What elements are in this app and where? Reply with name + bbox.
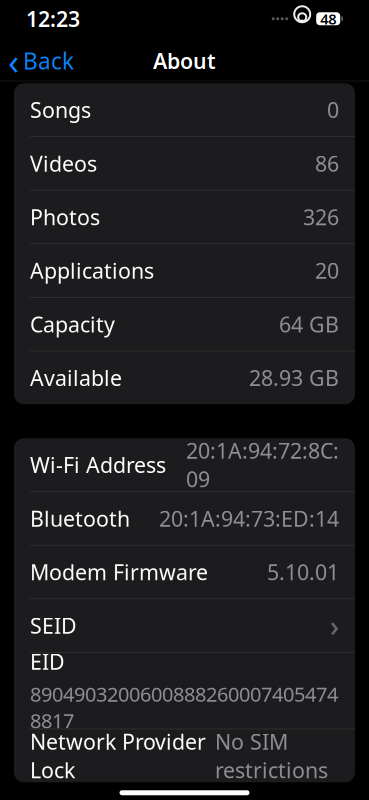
button[interactable]: Videos [14, 137, 355, 190]
staticText: 48 [320, 9, 336, 28]
button[interactable]: EID [14, 653, 355, 729]
button[interactable]: Available [14, 351, 355, 404]
staticText: Applications [30, 256, 154, 285]
staticText: 64 GB [279, 310, 339, 338]
staticText: Bluetooth [30, 504, 130, 532]
button[interactable]: ‹ [0, 42, 80, 80]
staticText: › [330, 607, 339, 644]
button[interactable]: Bluetooth [14, 492, 355, 545]
button[interactable]: Photos [14, 190, 355, 243]
staticText: 86 [315, 149, 339, 177]
button[interactable]: Wi-Fi Address [14, 438, 355, 491]
staticText: 89049032006008882600074054748817 [30, 681, 338, 734]
staticText: 0 [327, 96, 339, 124]
button[interactable]: Modem Firmware [14, 545, 355, 598]
staticText: 28.93 GB [249, 364, 339, 392]
staticText: Photos [30, 203, 100, 231]
staticText: ‹ [8, 37, 19, 85]
button[interactable]: Network Provider Lock [14, 729, 355, 782]
staticText: 326 [303, 203, 339, 231]
staticText: SEID [30, 611, 77, 640]
staticText: Back [23, 46, 74, 76]
button[interactable]: Applications [14, 244, 355, 297]
staticText: Videos [30, 149, 97, 177]
staticText: Capacity [30, 310, 115, 338]
staticText: 5.10.01 [267, 558, 339, 586]
staticText: 12:23 [26, 5, 80, 33]
staticText: 20:1A:94:73:ED:14 [159, 504, 339, 532]
staticText: 20 [315, 256, 339, 285]
staticText: Available [30, 364, 122, 392]
staticText: EID [30, 647, 65, 676]
staticText: Network Provider Lock [30, 727, 206, 784]
button[interactable]: SEID [14, 599, 355, 652]
staticText: 20:1A:94:72:8C:09 [186, 436, 339, 493]
staticText: Songs [30, 96, 91, 124]
staticText: About [153, 47, 216, 75]
staticText: Wi-Fi Address [30, 451, 166, 479]
staticText: No SIM restrictions [215, 727, 328, 784]
button[interactable]: Capacity [14, 298, 355, 351]
staticText: Modem Firmware [30, 558, 208, 586]
button[interactable]: Songs [14, 83, 355, 136]
